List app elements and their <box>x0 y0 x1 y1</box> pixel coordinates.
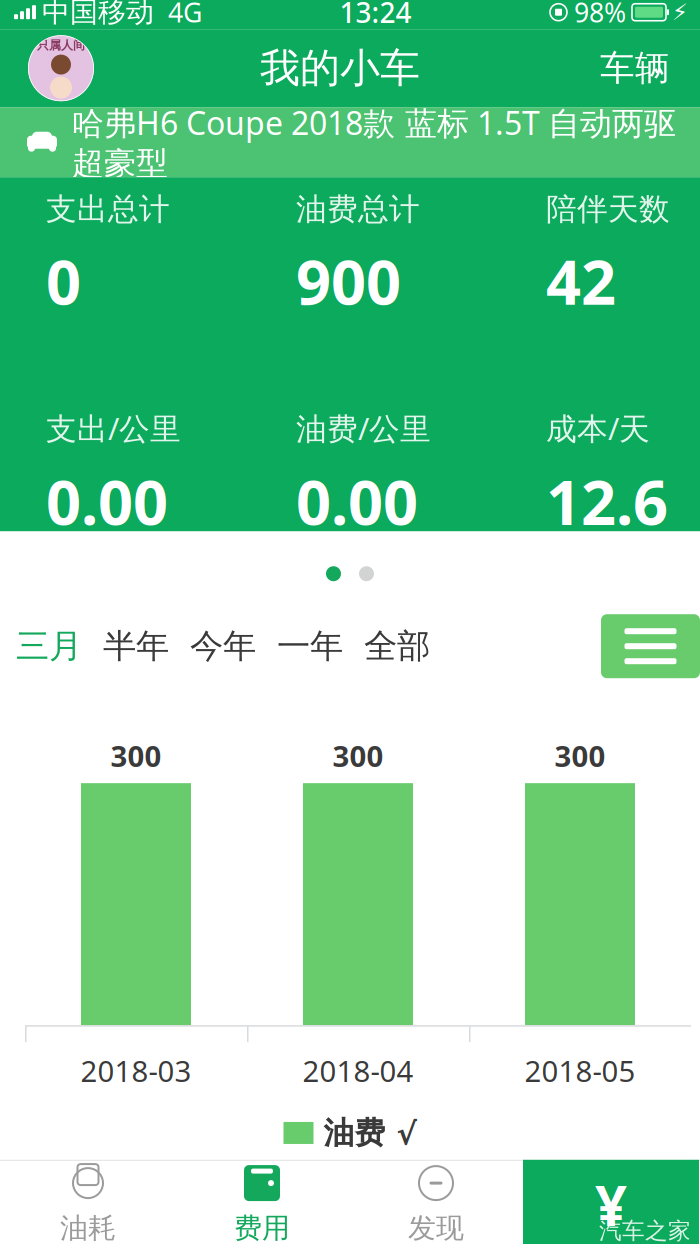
staticText: 13:24 <box>339 0 411 31</box>
staticText: 12.6 <box>546 460 668 542</box>
staticText: 支出/公里 <box>46 408 181 448</box>
staticText: ⚡︎ <box>672 0 688 25</box>
button[interactable]: 一年 <box>275 624 345 668</box>
button[interactable]: 三月 <box>14 624 84 668</box>
staticText: 油费 √ <box>323 1114 416 1152</box>
staticText: 发现 <box>408 1211 464 1244</box>
button[interactable]: 发现 <box>349 1160 523 1244</box>
staticText: 车辆 <box>600 47 670 89</box>
staticText: 2018-05 <box>524 1051 635 1090</box>
staticText: 油耗 <box>60 1211 116 1244</box>
button[interactable]: 全部 <box>362 624 432 668</box>
staticText: 成本/天 <box>546 408 650 448</box>
staticText: 全部 <box>364 626 430 667</box>
staticText: 2018-04 <box>302 1051 413 1090</box>
staticText: 费用 <box>234 1211 290 1244</box>
staticText: 汽车之家 <box>599 1217 691 1244</box>
staticText: 支出总计 <box>46 191 170 228</box>
staticText: 98% <box>574 0 626 30</box>
staticText: 300 <box>110 736 161 775</box>
staticText: 2018-03 <box>80 1051 191 1090</box>
staticText: 一年 <box>277 626 343 667</box>
button[interactable]: 半年 <box>101 624 171 668</box>
staticText: 今年 <box>190 626 256 667</box>
staticText: 只属人间 <box>37 38 85 52</box>
button[interactable]: 记一笔 <box>523 1160 699 1244</box>
staticText: 油费总计 <box>296 191 420 228</box>
staticText: 陪伴天数 <box>546 191 670 228</box>
button[interactable]: 油耗 <box>1 1160 175 1244</box>
staticText: 我的小车 <box>260 44 420 93</box>
staticText: ¥ <box>595 1167 627 1241</box>
staticText: 中国移动 <box>42 0 154 29</box>
button[interactable]: 车辆 <box>586 37 684 99</box>
staticText: 42 <box>546 240 616 322</box>
staticText: 300 <box>332 736 383 775</box>
staticText: 油费/公里 <box>296 408 431 448</box>
staticText: 900 <box>296 240 401 322</box>
staticText: 0.00 <box>296 460 418 542</box>
button[interactable]: 用户头像 <box>28 35 94 101</box>
staticText: 300 <box>554 736 605 775</box>
staticText: 4G <box>168 0 202 30</box>
staticText: 半年 <box>103 626 169 667</box>
button[interactable]: 更多选项 <box>601 614 700 678</box>
staticText: 哈弗H6 Coupe 2018款 蓝标 1.5T 自动两驱超豪型 <box>72 101 676 183</box>
staticText: 三月 <box>16 626 82 667</box>
button[interactable]: 费用 <box>175 1160 349 1244</box>
button[interactable]: 今年 <box>188 624 258 668</box>
staticText: 0 <box>46 240 81 322</box>
staticText: 0.00 <box>46 460 168 542</box>
